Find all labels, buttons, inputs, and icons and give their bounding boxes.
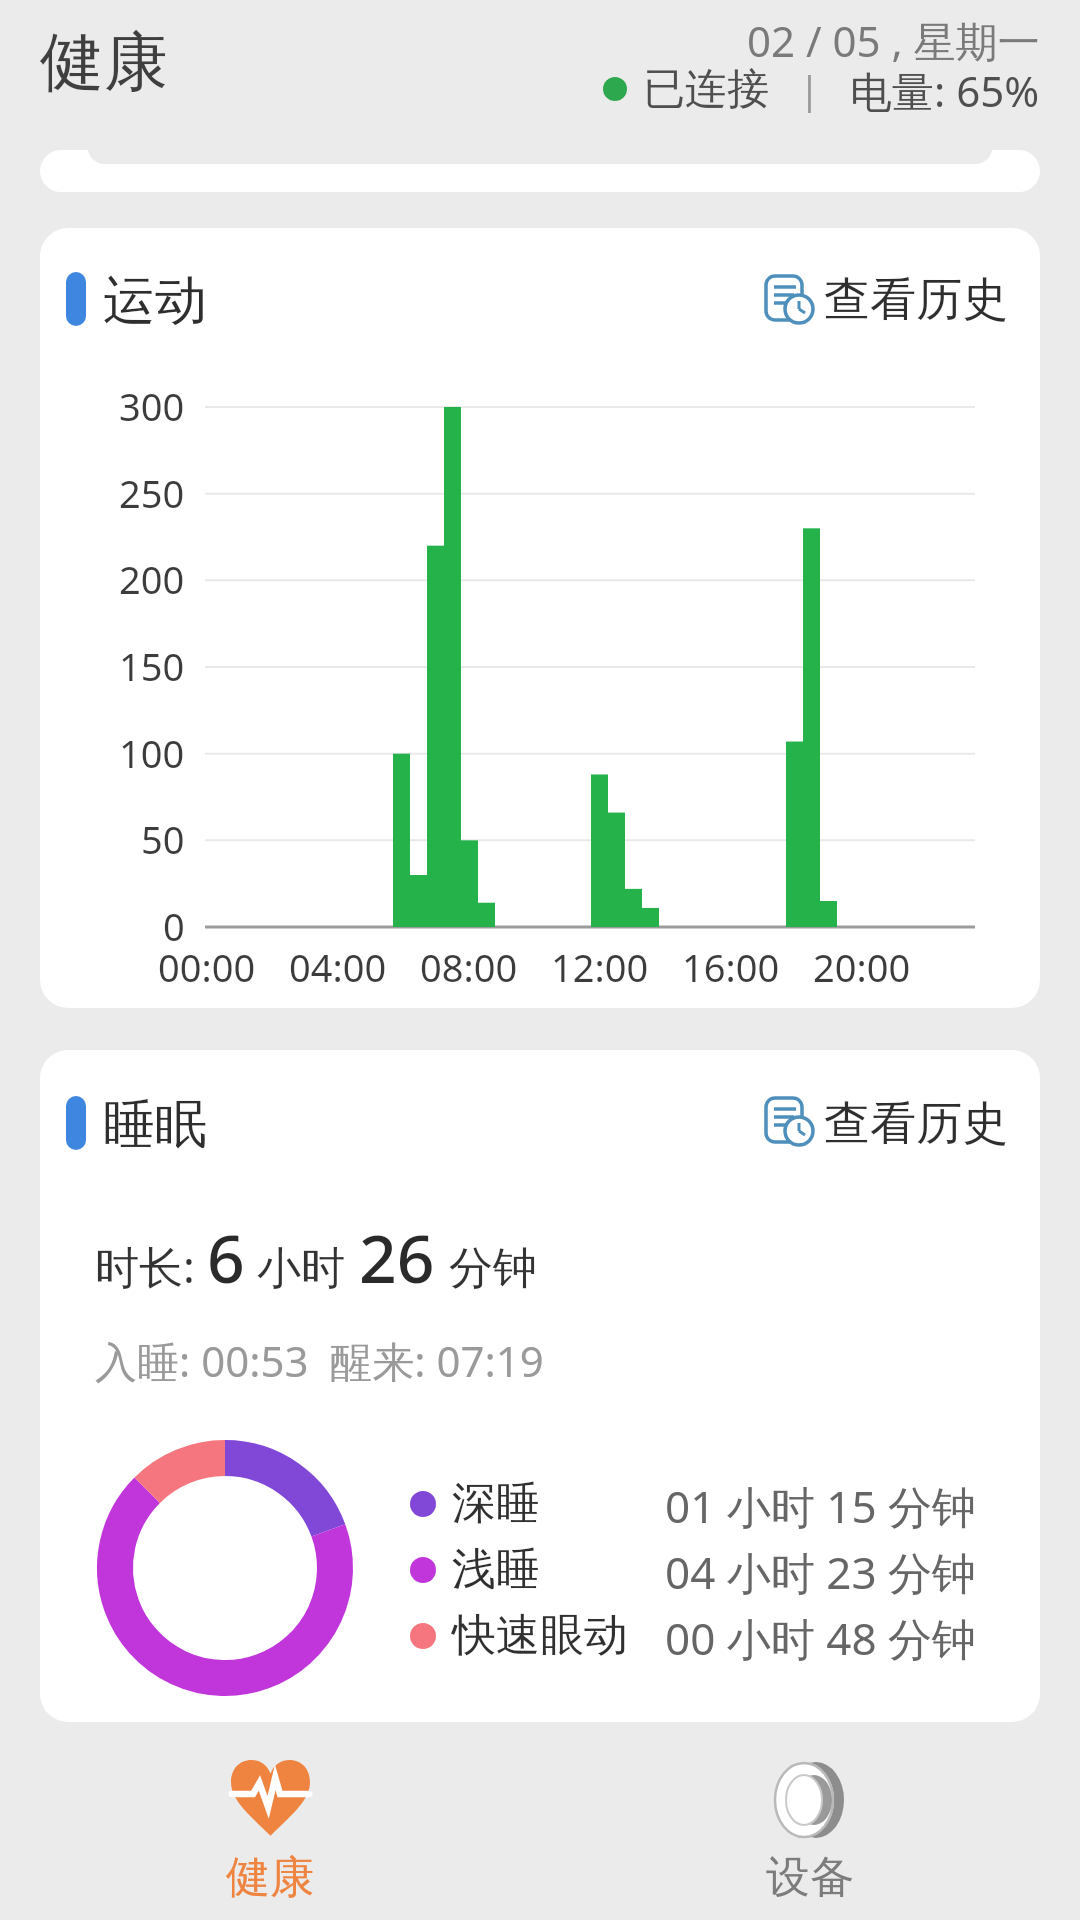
staticText: 00:00: [158, 941, 256, 993]
staticText: 12:00: [551, 941, 649, 993]
staticText: 300: [119, 380, 185, 432]
staticText: 深睡: [452, 1476, 540, 1531]
button[interactable]: 查看历史: [756, 1086, 1010, 1162]
staticText: 6: [207, 1212, 245, 1302]
staticText: 04 小时 23 分钟: [665, 1542, 976, 1602]
staticText: 200: [119, 553, 185, 605]
staticText: 08:00: [420, 941, 518, 993]
staticText: 50: [141, 813, 185, 865]
staticText: 250: [119, 467, 185, 519]
staticText: 健康: [226, 1850, 314, 1905]
staticText: 入睡: 00:53 醒来: 07:19: [95, 1332, 544, 1389]
staticText: 小时: [257, 1241, 345, 1296]
staticText: 100: [119, 727, 185, 779]
staticText: |: [799, 63, 820, 115]
staticText: 16:00: [682, 941, 780, 993]
staticText: 00 小时 48 分钟: [665, 1608, 976, 1668]
staticText: 电量: 65%: [850, 62, 1040, 116]
staticText: 0: [163, 900, 185, 952]
staticText: 20:00: [813, 941, 911, 993]
staticText: 睡眠: [103, 1092, 207, 1158]
staticText: 健康: [40, 22, 168, 103]
button[interactable]: 健康: [170, 1745, 370, 1910]
staticText: 时长:: [95, 1236, 195, 1296]
staticText: 04:00: [289, 941, 387, 993]
button[interactable]: 设备: [710, 1745, 910, 1910]
staticText: 浅睡: [452, 1542, 540, 1597]
staticText: 查看历史: [824, 1095, 1008, 1153]
staticText: 快速眼动: [452, 1608, 628, 1663]
staticText: 已连接: [643, 63, 769, 116]
staticText: 运动: [103, 268, 207, 334]
staticText: 26: [359, 1212, 435, 1302]
staticText: 查看历史: [824, 271, 1008, 329]
button[interactable]: 查看历史: [756, 262, 1010, 338]
staticText: 分钟: [449, 1241, 537, 1296]
staticText: 01 小时 15 分钟: [665, 1476, 976, 1536]
staticText: 设备: [766, 1850, 854, 1905]
staticText: 150: [119, 640, 185, 692]
staticText: 02 / 05 , 星期一: [747, 12, 1040, 69]
